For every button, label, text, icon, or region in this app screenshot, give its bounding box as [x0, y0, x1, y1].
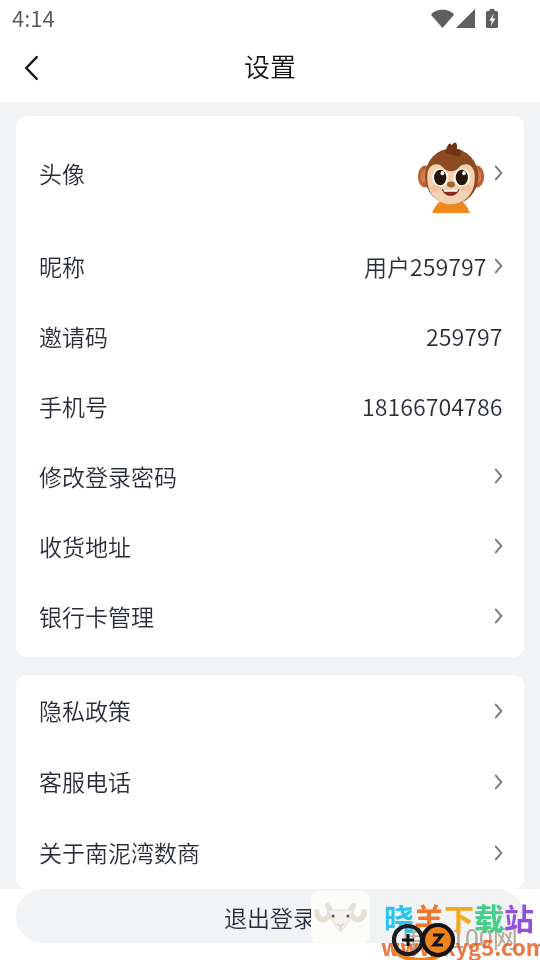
button[interactable]: 收货地址 — [16, 512, 524, 582]
staticText: 单充100网 — [401, 919, 518, 955]
staticText: 退出登录 — [224, 900, 316, 933]
staticText: 头像 — [39, 156, 85, 189]
staticText: 昵称 — [39, 249, 85, 282]
button[interactable]: 客服电话 — [16, 747, 524, 818]
staticText: 设置 — [244, 47, 297, 85]
button[interactable]: 隐私政策 — [16, 676, 524, 747]
button[interactable]: 修改登录密码 — [16, 442, 524, 512]
button[interactable]: 银行卡管理 — [16, 582, 524, 652]
staticText: 客服电话 — [39, 764, 131, 797]
staticText: www.xyg5.com — [381, 930, 540, 960]
staticText: 4:14 — [12, 1, 55, 33]
staticText: 站 — [504, 895, 534, 938]
staticText: 邀请码 — [39, 319, 108, 352]
staticText: 修改登录密码 — [39, 459, 177, 492]
button[interactable]: 头像 — [16, 116, 524, 232]
staticText: 手机号 — [39, 389, 108, 422]
button[interactable]: 昵称 — [16, 232, 524, 302]
staticText: 载 — [474, 895, 504, 938]
button[interactable]: 手机号 — [16, 372, 524, 442]
staticText: 隐私政策 — [39, 693, 131, 726]
staticText: 18166704786 — [362, 389, 503, 422]
button[interactable]: Back — [7, 46, 55, 94]
staticText: 关于南泥湾数商 — [39, 835, 200, 868]
staticText: 银行卡管理 — [39, 599, 154, 632]
button[interactable]: 邀请码 — [16, 302, 524, 372]
staticText: 259797 — [426, 319, 503, 352]
staticText: 晓 — [384, 895, 414, 938]
staticText: 收货地址 — [39, 529, 131, 562]
button[interactable]: 关于南泥湾数商 — [16, 818, 524, 889]
staticText: 用户259797 — [364, 249, 487, 282]
staticText: 羊 — [414, 895, 444, 938]
button[interactable]: 退出登录 — [16, 889, 524, 943]
staticText: 下 — [444, 895, 474, 938]
